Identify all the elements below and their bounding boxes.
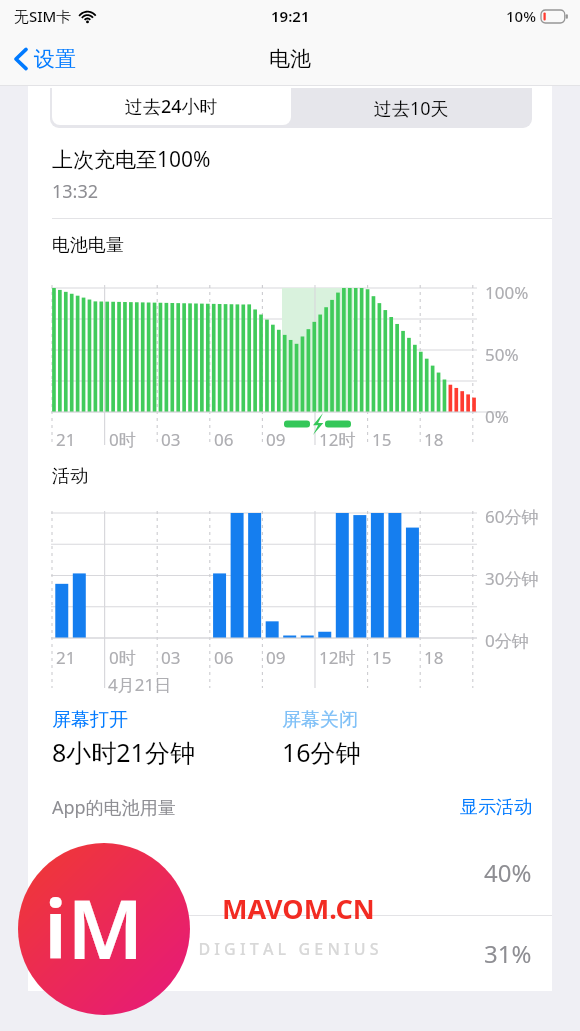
- staticText: 03: [161, 646, 181, 669]
- staticText: 0分钟: [485, 629, 529, 652]
- staticText: 过去10天: [374, 96, 449, 121]
- staticText: 06: [214, 646, 234, 669]
- staticText: 无SIM卡: [14, 6, 72, 26]
- staticText: 30分钟: [485, 567, 539, 590]
- staticText: 屏幕打开: [52, 708, 128, 732]
- button[interactable]: 过去24小时: [52, 88, 291, 125]
- staticText: 18: [424, 646, 444, 669]
- staticText: 16分钟: [282, 735, 361, 769]
- button[interactable]: 过去10天: [291, 88, 532, 128]
- staticText: 40%: [484, 856, 532, 889]
- staticText: 电池: [269, 46, 311, 72]
- staticText: 09: [266, 428, 286, 451]
- button[interactable]: 40%: [28, 830, 552, 915]
- staticText: MAVOM.CN: [222, 890, 375, 927]
- staticText: 视频: [100, 924, 146, 953]
- staticText: 19:21: [271, 6, 310, 26]
- staticText: 0时: [109, 646, 136, 669]
- staticText: 15: [372, 428, 392, 451]
- staticText: 06: [214, 428, 234, 451]
- staticText: 18: [424, 428, 444, 451]
- staticText: 09: [266, 646, 286, 669]
- staticText: 上次充电至100%: [52, 145, 211, 174]
- staticText: 12时: [319, 428, 356, 451]
- staticText: 10%: [506, 6, 536, 26]
- staticText: 音频: [100, 957, 142, 983]
- staticText: 60分钟: [485, 505, 539, 528]
- staticText: 4月21日: [108, 673, 172, 696]
- staticText: 8小时21分钟: [52, 735, 195, 769]
- staticText: 12时: [319, 646, 356, 669]
- staticText: 设置: [34, 46, 76, 72]
- staticText: 活动: [52, 465, 88, 488]
- staticText: 21: [56, 428, 76, 451]
- staticText: App的电池用量: [52, 795, 176, 820]
- staticText: 03: [161, 428, 181, 451]
- staticText: 100%: [485, 281, 529, 304]
- staticText: 0时: [109, 428, 136, 451]
- staticText: 21: [56, 646, 76, 669]
- staticText: 电池电量: [52, 234, 124, 257]
- staticText: 屏幕关闭: [282, 708, 358, 732]
- button[interactable]: 显示活动: [460, 796, 532, 819]
- staticText: 13:32: [52, 179, 99, 204]
- staticText: 显示活动: [460, 796, 532, 819]
- button[interactable]: 视频: [28, 916, 552, 991]
- staticText: 0%: [485, 405, 509, 428]
- staticText: 50%: [485, 343, 519, 366]
- staticText: iM: [44, 871, 144, 983]
- button[interactable]: 设置: [8, 40, 82, 78]
- staticText: D I G I T A L G E N I U S: [198, 938, 379, 960]
- staticText: 31%: [484, 937, 532, 970]
- staticText: 15: [372, 646, 392, 669]
- staticText: 过去24小时: [125, 94, 218, 119]
